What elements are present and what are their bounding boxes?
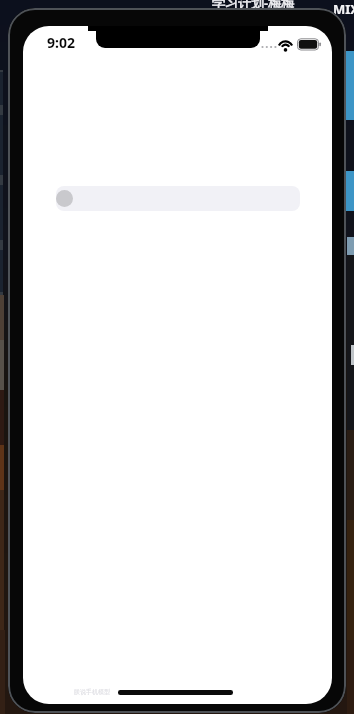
- staticText: MIX: [333, 0, 354, 18]
- button[interactable]: [56, 186, 300, 211]
- staticText: 朕说手机模型: [74, 688, 110, 696]
- staticText: 学习计划-梅梅: [212, 0, 295, 12]
- button[interactable]: 9:02: [47, 33, 75, 52]
